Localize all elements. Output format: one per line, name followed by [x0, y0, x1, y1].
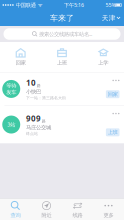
button[interactable]: 3站 [0, 106, 124, 143]
staticText: 更多 [103, 212, 113, 218]
button[interactable]: 更多 [93, 199, 124, 220]
staticText: 下午5:16 [64, 1, 84, 9]
staticText: 下一站：第三路名大街 [26, 96, 66, 100]
button[interactable]: 上学 [83, 42, 124, 72]
staticText: 等待 [6, 82, 16, 89]
button[interactable]: 查询 [0, 199, 31, 220]
button[interactable]: 回家 [0, 42, 41, 72]
button[interactable]: 线路 [62, 199, 93, 220]
staticText: 路 [42, 119, 46, 124]
staticText: 上班 [57, 59, 67, 66]
staticText: 附近 [41, 212, 51, 218]
staticText: 发车 [6, 89, 16, 96]
staticText: 搜索公交线路或车站名... [39, 30, 92, 38]
staticText: 线路 [72, 212, 82, 218]
button[interactable]: 附近 [31, 199, 62, 220]
staticText: 10 [26, 77, 36, 88]
staticText: 中国联通 ᯤ [14, 1, 43, 9]
staticText: 小快巴 [26, 88, 41, 95]
staticText: 马庄公交城 [26, 124, 51, 131]
staticText: 3站 [7, 121, 15, 128]
button[interactable]: 上班 [41, 42, 83, 72]
staticText: 车来了 [50, 13, 74, 23]
staticText: 上学 [98, 59, 108, 66]
staticText: 天津 [102, 14, 116, 22]
staticText: 回家 [108, 91, 118, 97]
button[interactable]: 等待 [0, 73, 124, 105]
staticText: 上班 [108, 129, 118, 136]
staticText: 55% [105, 1, 115, 9]
staticText: 终点站 [26, 131, 38, 136]
staticText: 909 [26, 113, 41, 124]
staticText: 查询 [10, 212, 20, 218]
button[interactable]: 搜索公交线路或车站名... [3, 28, 120, 40]
staticText: 路 [37, 83, 41, 88]
staticText: 回家 [16, 59, 26, 66]
button[interactable]: 天津 [98, 11, 124, 25]
